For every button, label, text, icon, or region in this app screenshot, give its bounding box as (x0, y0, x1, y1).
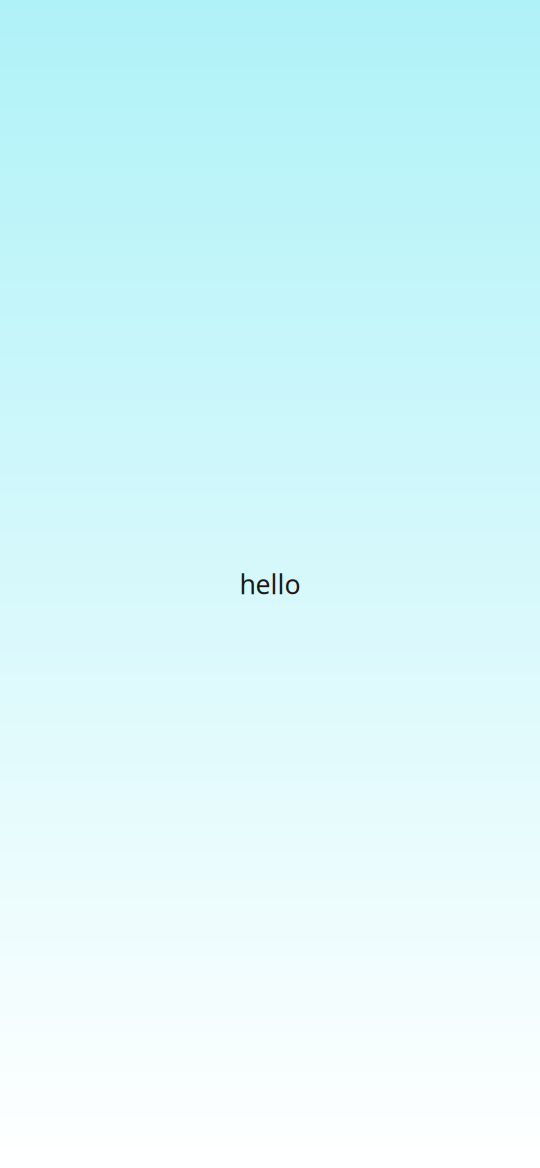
staticText: hello (239, 566, 300, 602)
